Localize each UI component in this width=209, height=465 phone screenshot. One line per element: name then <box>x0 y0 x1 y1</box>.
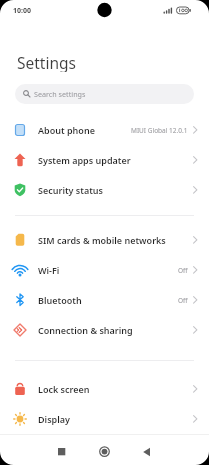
staticText: MIUI Global 12.0.1 <box>131 126 188 135</box>
staticText: Off <box>178 296 188 305</box>
staticText: SIM cards & mobile networks <box>38 234 166 246</box>
staticText: Bluetooth <box>38 294 82 306</box>
staticText: Search settings <box>34 89 86 99</box>
staticText: Display <box>38 413 70 425</box>
staticText: System apps updater <box>38 154 131 166</box>
staticText: Off <box>178 266 188 275</box>
staticText: Security status <box>38 184 104 196</box>
staticText: Lock screen <box>38 383 90 395</box>
staticText: Connection & sharing <box>38 324 133 336</box>
staticText: 10:00 <box>13 6 31 16</box>
staticText: Settings <box>17 52 76 72</box>
staticText: About phone <box>38 124 95 136</box>
staticText: Wi-Fi <box>38 264 60 276</box>
